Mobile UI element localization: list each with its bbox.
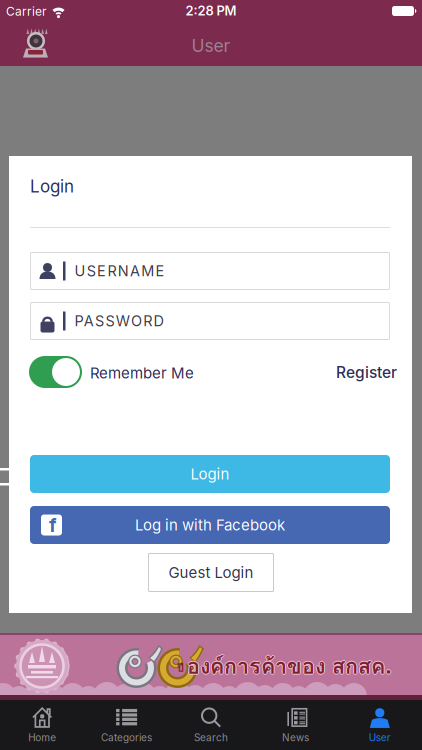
- staticText: Log in with Facebook: [135, 516, 285, 534]
- staticText: Categories: [101, 731, 152, 744]
- button[interactable]: News: [253, 700, 338, 750]
- staticText: Login: [30, 176, 74, 197]
- staticText: Register: [336, 363, 397, 382]
- button[interactable]: Categories: [84, 700, 169, 750]
- button[interactable]: Logo: [20, 27, 51, 58]
- staticText: 2:28 PM: [185, 3, 236, 19]
- staticText: องค์การค้าของ สกสค.: [187, 649, 392, 683]
- staticText: องค์การค้าของ สกสค.: [187, 648, 392, 682]
- staticText: Carrier: [6, 4, 47, 18]
- button[interactable]: Remember Me: [29, 356, 82, 388]
- button[interactable]: Register: [336, 363, 397, 382]
- staticText: User: [191, 35, 230, 56]
- staticText: Guest Login: [168, 563, 253, 581]
- staticText: Remember Me: [90, 364, 194, 382]
- button[interactable]: Login: [30, 455, 390, 493]
- staticText: User: [369, 731, 391, 744]
- button[interactable]: f: [30, 506, 390, 544]
- staticText: องค์การค้าของ สกสค.: [187, 650, 392, 684]
- staticText: News: [282, 731, 309, 744]
- button[interactable]: Username: [30, 252, 390, 290]
- staticText: Home: [28, 731, 56, 744]
- button[interactable]: Password: [30, 302, 390, 340]
- staticText: PASSWORD: [74, 312, 164, 330]
- staticText: f: [49, 513, 57, 536]
- button[interactable]: User: [338, 700, 422, 750]
- button[interactable]: Search: [169, 700, 253, 750]
- staticText: USERNAME: [74, 262, 165, 280]
- button[interactable]: Home: [0, 700, 84, 750]
- staticText: Login: [190, 465, 229, 483]
- staticText: องค์การค้าของ สกสค.: [186, 649, 391, 683]
- button[interactable]: Guest Login: [148, 553, 274, 592]
- staticText: Search: [194, 731, 228, 744]
- staticText: องค์การค้าของ สกสค.: [188, 649, 393, 683]
- staticText: ปี: [177, 659, 184, 676]
